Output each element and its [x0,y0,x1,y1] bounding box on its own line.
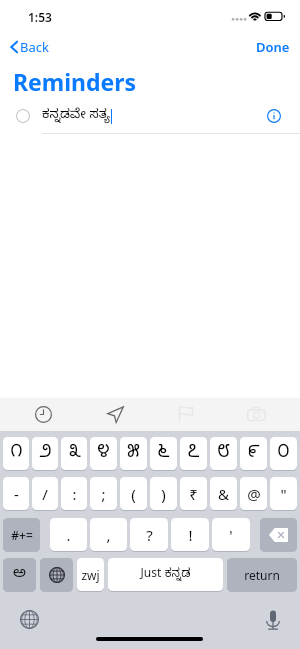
button[interactable]: ( [120,477,147,510]
staticText: ೪ [97,442,110,466]
button[interactable]: Backspace [260,518,297,551]
button[interactable]: Flag [177,405,193,421]
button[interactable]: ಅ [3,558,36,591]
staticText: , [106,525,111,545]
staticText: ೩ [68,442,81,466]
staticText: Back [20,38,49,56]
button[interactable]: ೨ [32,437,58,470]
button[interactable]: @ [240,477,267,510]
button[interactable]: ? [130,518,168,551]
staticText: ₹ [189,484,198,504]
button[interactable]: Camera [247,405,266,424]
button[interactable]: ೫ [120,437,147,470]
staticText: : [72,484,77,504]
staticText: ಅ [13,565,26,585]
staticText: 1:53 [28,9,52,25]
button[interactable]: , [90,518,127,551]
staticText: ! [188,525,193,545]
button[interactable]: return [227,558,297,591]
button[interactable]: Time [34,405,52,423]
button[interactable]: ೭ [180,437,207,470]
button[interactable]: ೪ [90,437,117,470]
staticText: Just ಕನ್ನಡ [140,567,191,583]
button[interactable]: Next keyboard [40,558,73,591]
staticText: #+= [11,527,33,543]
staticText: & [218,484,229,504]
button[interactable]: ₹ [180,477,207,510]
button[interactable]: ! [171,518,209,551]
button[interactable]: zwj [77,558,104,591]
staticText: ಕನ್ನಡವೇ ಸತ್ಯ [42,107,111,125]
staticText: " [280,484,287,504]
button[interactable]: #+= [3,518,40,551]
button[interactable]: Just ಕನ್ನಡ [108,558,223,591]
staticText: / [42,484,48,504]
staticText: - [14,484,19,504]
staticText: ೭ [187,442,200,466]
button[interactable]: : [61,477,87,510]
button[interactable]: ೦ [270,437,297,470]
staticText: Done [256,38,290,56]
button[interactable]: ೬ [150,437,177,470]
button[interactable]: Location [106,405,124,423]
staticText: ' [229,525,233,545]
staticText: ( [131,484,136,504]
staticText: @ [247,484,261,504]
staticText: return [244,567,280,583]
staticText: ೦ [277,442,290,466]
staticText: . [66,525,71,545]
staticText: ; [101,484,106,504]
button[interactable]: Back [6,36,55,58]
button[interactable]: . [50,518,87,551]
staticText: ೮ [217,442,230,466]
staticText: ೬ [157,442,170,466]
staticText: ೧ [10,442,23,466]
staticText: ೫ [127,442,140,466]
staticText: zwj [81,567,100,583]
staticText: ೨ [39,442,52,466]
staticText: ? [146,525,153,545]
button[interactable]: Done [250,36,296,58]
staticText: ) [161,484,166,504]
button[interactable]: - [3,477,29,510]
staticText: ೯ [247,442,260,466]
button[interactable]: / [32,477,58,510]
button[interactable]: ' [212,518,250,551]
button[interactable]: & [210,477,237,510]
button[interactable]: ) [150,477,177,510]
button[interactable]: " [270,477,297,510]
button[interactable]: ೯ [240,437,267,470]
button[interactable]: Dictate [258,605,287,634]
button[interactable]: Reminder details [262,104,286,128]
button[interactable]: Change keyboard [15,605,44,634]
button[interactable]: ೮ [210,437,237,470]
button[interactable]: ; [90,477,117,510]
staticText: Reminders [13,66,137,97]
button[interactable]: ಕನ್ನಡವೇ ಸತ್ಯ [0,103,300,132]
button[interactable]: ೧ [3,437,29,470]
button[interactable]: ೩ [61,437,87,470]
